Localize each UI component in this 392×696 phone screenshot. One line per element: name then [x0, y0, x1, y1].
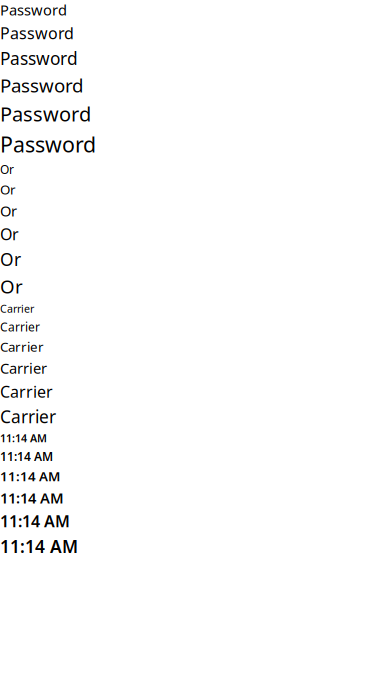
staticText: Password — [0, 47, 78, 70]
staticText: Or — [0, 274, 23, 299]
staticText: Password — [0, 100, 91, 127]
staticText: Password — [0, 73, 83, 97]
staticText: 11:14 AM — [0, 467, 60, 485]
staticText: Carrier — [0, 381, 53, 402]
staticText: Carrier — [0, 302, 34, 316]
staticText: Or — [0, 201, 17, 221]
staticText: Or — [0, 180, 16, 198]
staticText: Or — [0, 223, 19, 245]
staticText: Carrier — [0, 338, 44, 355]
staticText: 11:14 AM — [0, 488, 64, 507]
staticText: 11:14 AM — [0, 448, 53, 464]
staticText: Carrier — [0, 405, 56, 428]
staticText: Or — [0, 161, 14, 177]
staticText: Or — [0, 248, 21, 271]
staticText: 11:14 AM — [0, 431, 47, 445]
staticText: Password — [0, 0, 67, 19]
staticText: Password — [0, 130, 96, 158]
staticText: 11:14 AM — [0, 535, 78, 558]
staticText: Password — [0, 22, 74, 44]
staticText: 11:14 AM — [0, 510, 70, 532]
staticText: Carrier — [0, 358, 47, 378]
staticText: Carrier — [0, 319, 40, 335]
